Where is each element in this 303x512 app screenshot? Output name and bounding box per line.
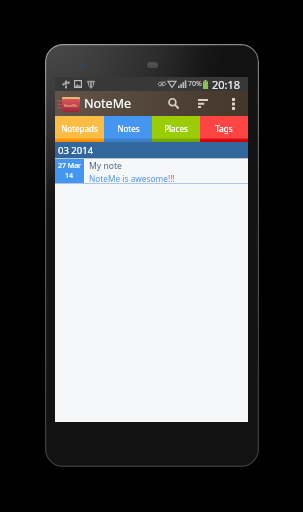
- staticText: Places: [164, 123, 188, 134]
- button[interactable]: Sort: [188, 91, 218, 116]
- button[interactable]: Notes: [104, 116, 152, 142]
- staticText: Notepads: [61, 123, 98, 134]
- staticText: 27 Mar: [58, 161, 81, 171]
- button[interactable]: Search: [158, 91, 188, 116]
- button[interactable]: Notepads: [55, 116, 104, 142]
- staticText: NoteMe: [84, 95, 132, 112]
- staticText: Notes: [117, 123, 140, 134]
- staticText: NoteMe is awesome!!!: [89, 173, 175, 183]
- staticText: 03 2014: [58, 144, 94, 157]
- button[interactable]: 27 Mar: [55, 159, 248, 183]
- staticText: Tags: [215, 123, 233, 134]
- staticText: 14: [65, 171, 74, 181]
- button[interactable]: Tags: [200, 116, 248, 142]
- staticText: 20:18: [212, 77, 241, 91]
- staticText: 70%: [188, 79, 202, 89]
- staticText: NoteMe: [64, 103, 78, 108]
- staticText: My note: [89, 160, 122, 172]
- button[interactable]: More options: [218, 91, 248, 116]
- button[interactable]: Places: [152, 116, 200, 142]
